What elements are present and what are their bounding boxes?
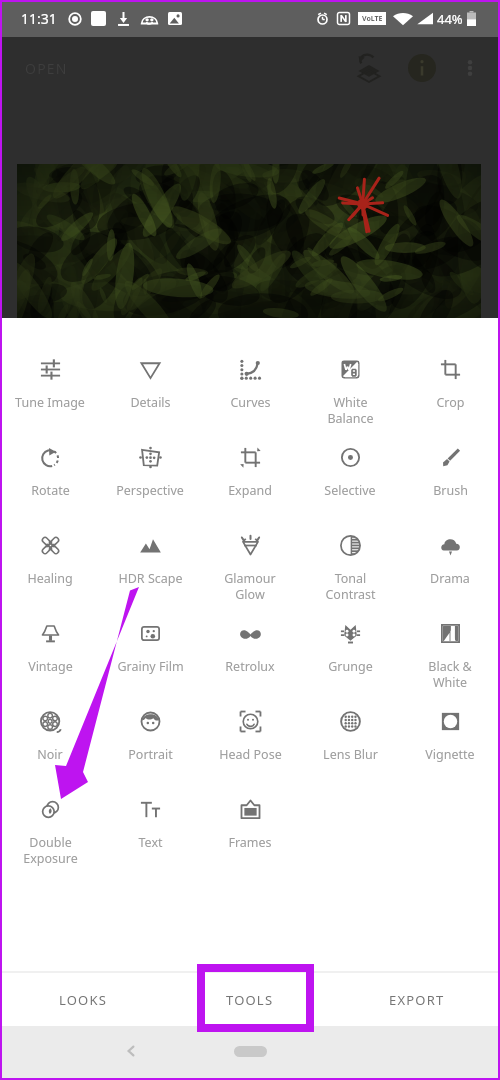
staticText: Portrait xyxy=(128,746,173,763)
button[interactable]: Portrait xyxy=(100,700,200,788)
button[interactable]: Perspective xyxy=(100,436,200,524)
staticText: Grunge xyxy=(328,658,373,675)
button[interactable]: Black & White xyxy=(400,612,500,700)
staticText: Brush xyxy=(433,482,468,499)
button[interactable]: Rotate xyxy=(0,436,100,524)
staticText: Text xyxy=(138,834,163,851)
button[interactable]: White Balance xyxy=(300,348,400,436)
staticText: Drama xyxy=(430,570,470,587)
staticText: Perspective xyxy=(116,482,184,499)
button[interactable]: Glamour Glow xyxy=(200,524,300,612)
staticText: Glamour Glow xyxy=(224,570,276,603)
button[interactable]: Info xyxy=(408,54,436,82)
button[interactable]: Crop xyxy=(400,348,500,436)
button[interactable]: Text xyxy=(100,788,200,876)
staticText: HDR Scape xyxy=(118,570,183,587)
button[interactable]: Brush xyxy=(400,436,500,524)
button[interactable]: Grainy Film xyxy=(100,612,200,700)
staticText: Frames xyxy=(228,834,272,851)
staticText: Noir xyxy=(37,746,63,763)
staticText: Grainy Film xyxy=(117,658,184,675)
staticText: Details xyxy=(130,394,171,411)
staticText: Curves xyxy=(230,394,271,411)
button[interactable]: Vintage xyxy=(0,612,100,700)
staticText: Expand xyxy=(228,482,272,499)
staticText: Retrolux xyxy=(225,658,275,675)
button[interactable]: Retrolux xyxy=(200,612,300,700)
button[interactable]: Tune Image xyxy=(0,348,100,436)
staticText: Vintage xyxy=(28,658,73,675)
staticText: Selective xyxy=(324,482,376,499)
button[interactable]: Curves xyxy=(200,348,300,436)
button[interactable]: Healing xyxy=(0,524,100,612)
staticText: Tonal Contrast xyxy=(325,570,376,603)
button[interactable]: Stacks xyxy=(355,54,383,82)
button[interactable]: Head Pose xyxy=(200,700,300,788)
staticText: Crop xyxy=(436,394,465,411)
button[interactable]: More options xyxy=(458,56,482,80)
staticText: Vignette xyxy=(425,746,475,763)
staticText: Head Pose xyxy=(219,746,282,763)
button[interactable]: Tonal Contrast xyxy=(300,524,400,612)
staticText: LOOKS xyxy=(59,991,108,1009)
button[interactable]: TOOLS xyxy=(166,973,333,1026)
button[interactable]: Lens Blur xyxy=(300,700,400,788)
staticText: OPEN xyxy=(25,59,68,78)
button[interactable]: Selective xyxy=(300,436,400,524)
staticText: Double Exposure xyxy=(23,834,78,867)
staticText: White Balance xyxy=(327,394,374,427)
staticText: Healing xyxy=(27,570,73,587)
button[interactable]: Noir xyxy=(0,700,100,788)
button[interactable]: LOOKS xyxy=(0,973,166,1026)
button[interactable]: Grunge xyxy=(300,612,400,700)
button[interactable]: Double Exposure xyxy=(0,788,100,876)
button[interactable]: EXPORT xyxy=(333,973,500,1026)
staticText: Lens Blur xyxy=(323,746,378,763)
staticText: Rotate xyxy=(31,482,70,499)
button[interactable]: HDR Scape xyxy=(100,524,200,612)
button[interactable]: Vignette xyxy=(400,700,500,788)
staticText: Tune Image xyxy=(15,394,85,411)
staticText: TOOLS xyxy=(226,991,274,1009)
staticText: 11:31 xyxy=(21,9,57,28)
staticText: EXPORT xyxy=(389,991,445,1009)
button[interactable]: Expand xyxy=(200,436,300,524)
button[interactable]: Drama xyxy=(400,524,500,612)
staticText: Black & White xyxy=(428,658,472,691)
button[interactable]: Back xyxy=(121,1041,141,1061)
button[interactable]: Details xyxy=(100,348,200,436)
staticText: 44% xyxy=(437,10,463,28)
staticText: VoLTE xyxy=(362,14,383,24)
button[interactable]: OPEN xyxy=(25,59,68,78)
button[interactable]: Frames xyxy=(200,788,300,876)
